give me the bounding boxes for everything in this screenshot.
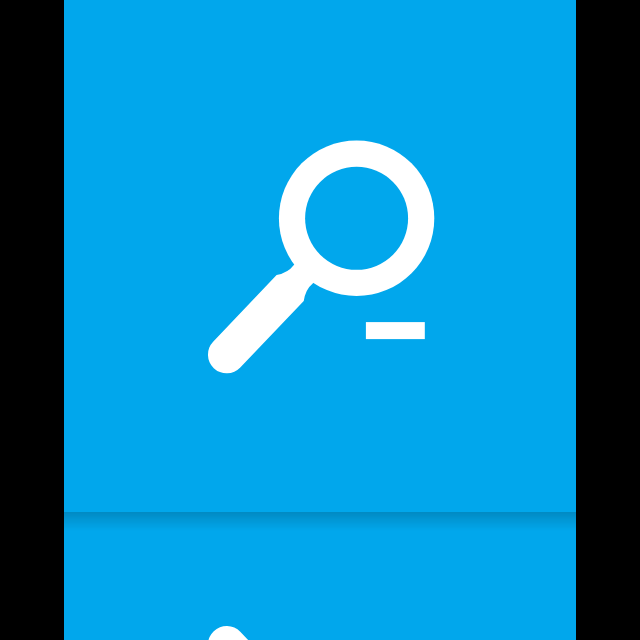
button[interactable]: Zoom out: [64, 0, 576, 512]
